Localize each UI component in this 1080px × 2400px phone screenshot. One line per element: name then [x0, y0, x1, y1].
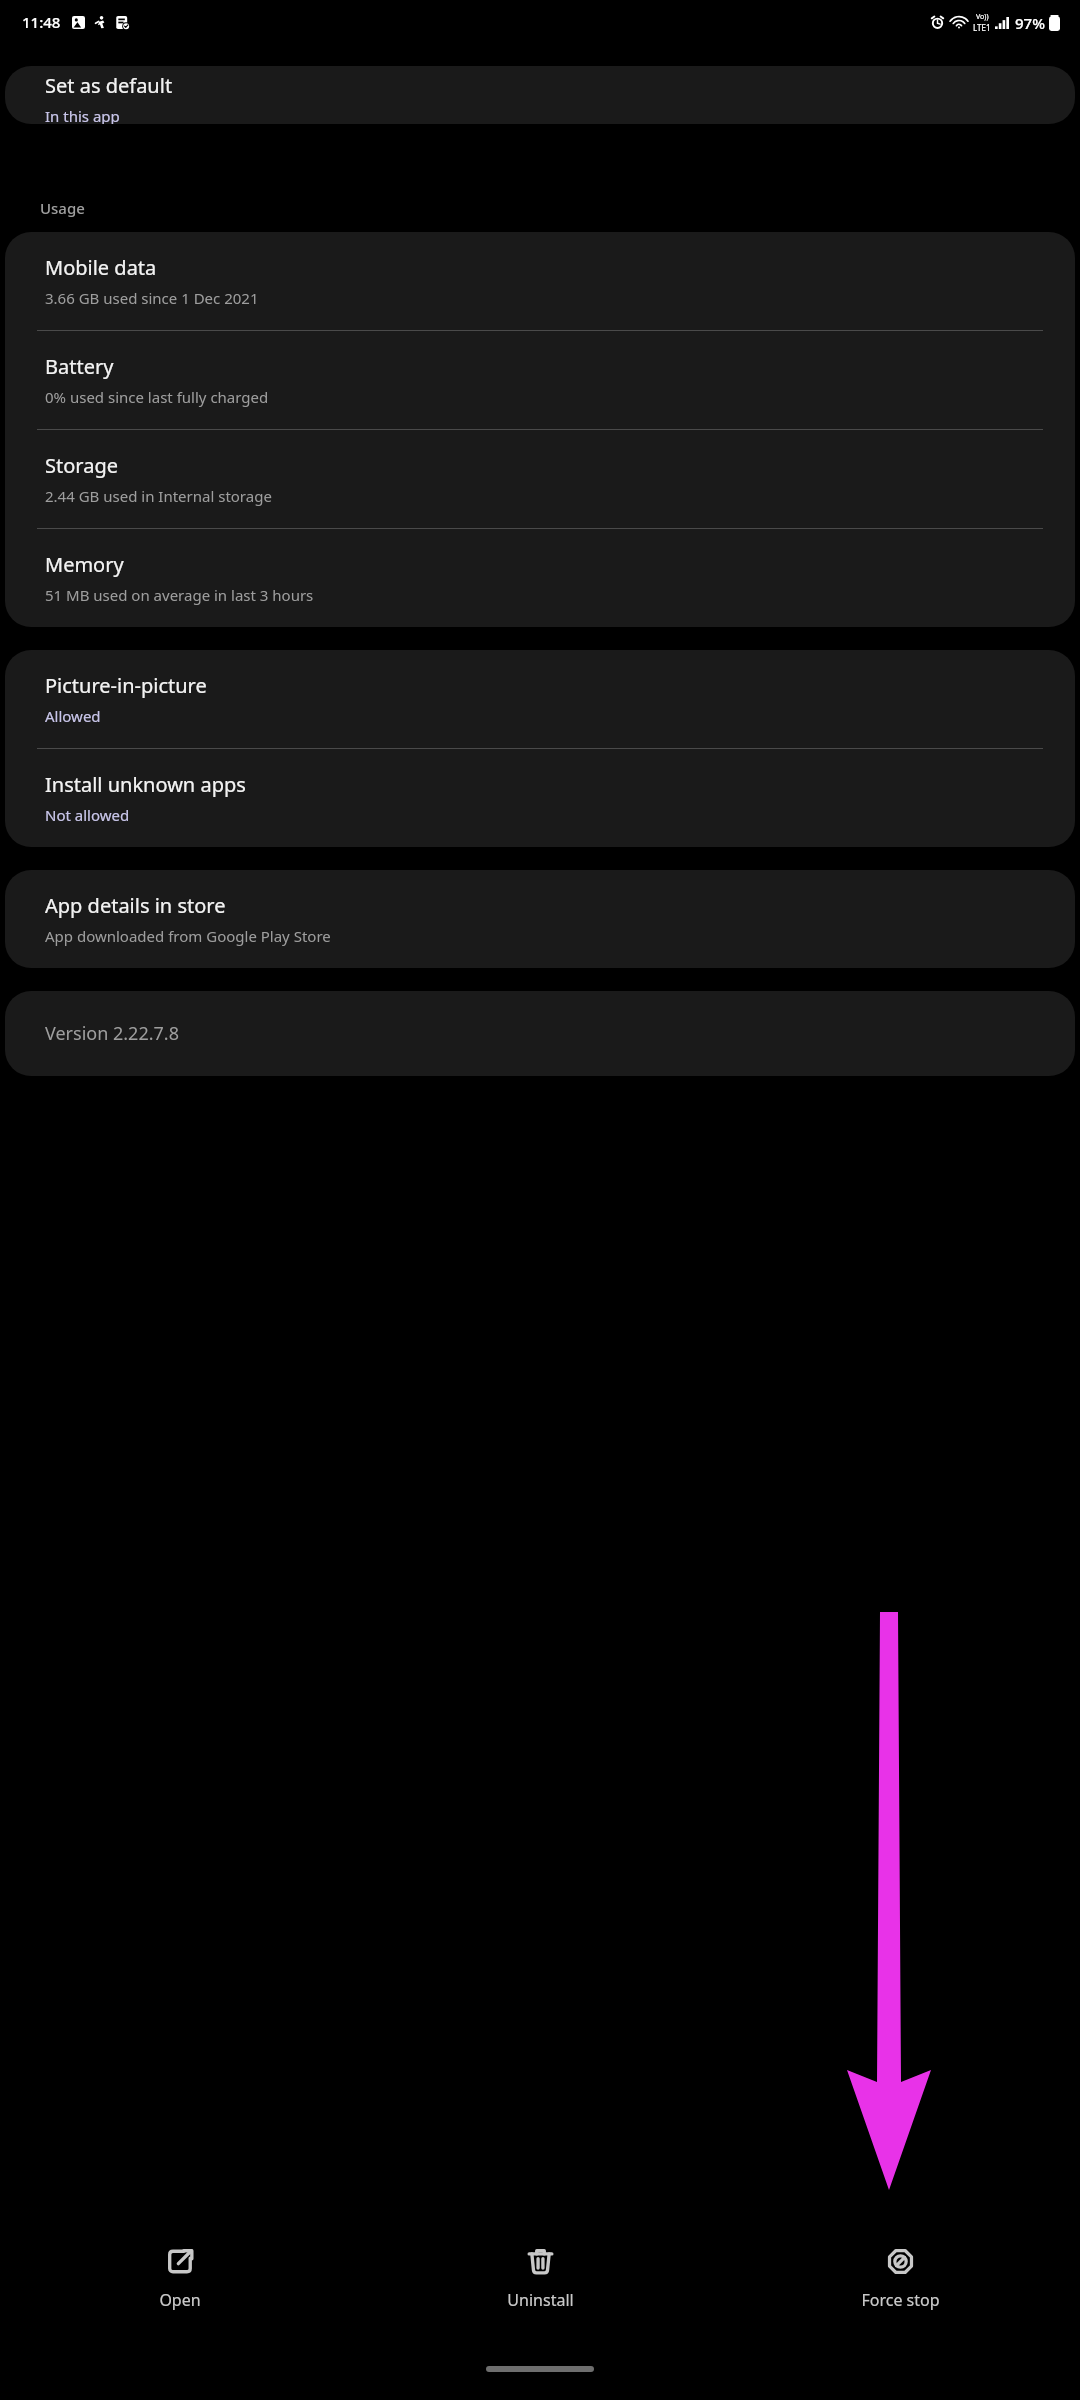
button[interactable]: Back	[14, 57, 62, 105]
staticText: Storage	[45, 452, 118, 479]
staticText: Memory	[45, 551, 124, 578]
button[interactable]: Set as default	[5, 66, 1075, 124]
staticText: 3.66 GB used since 1 Dec 2021	[45, 288, 259, 308]
staticText: 0% used since last fully charged	[45, 387, 269, 407]
button[interactable]: Force stop	[720, 2226, 1080, 2356]
button[interactable]: Uninstall	[360, 2226, 720, 2356]
staticText: LTE1	[973, 22, 991, 33]
staticText: Usage	[40, 198, 85, 218]
staticText: Set as default	[45, 72, 173, 99]
button[interactable]: Storage	[5, 430, 1075, 529]
staticText: 11:48	[22, 12, 61, 32]
button[interactable]: Mobile data	[5, 232, 1075, 331]
staticText: Allowed	[45, 706, 101, 726]
staticText: 97%	[1015, 13, 1045, 33]
button[interactable]: Picture-in-picture	[5, 650, 1075, 749]
staticText: 51 MB used on average in last 3 hours	[45, 585, 314, 605]
button[interactable]: Open	[0, 2226, 360, 2356]
staticText: Open	[159, 2289, 201, 2311]
staticText: Version 2.22.7.8	[45, 1021, 179, 1046]
staticText: Picture-in-picture	[45, 672, 207, 699]
staticText: Uninstall	[507, 2289, 574, 2311]
staticText: App downloaded from Google Play Store	[45, 926, 331, 946]
staticText: App info	[70, 64, 175, 99]
staticText: In this app	[45, 106, 120, 124]
button[interactable]: Install unknown apps	[5, 749, 1075, 847]
staticText: Force stop	[861, 2289, 940, 2311]
staticText: 2.44 GB used in Internal storage	[45, 486, 272, 506]
button[interactable]: App details in store	[5, 870, 1075, 968]
staticText: Battery	[45, 353, 114, 380]
button[interactable]: Battery	[5, 331, 1075, 430]
button[interactable]: Version 2.22.7.8	[5, 991, 1075, 1076]
staticText: Vo))	[976, 12, 989, 22]
staticText: Install unknown apps	[45, 771, 246, 798]
staticText: Not allowed	[45, 805, 130, 825]
staticText: App details in store	[45, 892, 226, 919]
button[interactable]: Memory	[5, 529, 1075, 627]
staticText: Mobile data	[45, 254, 157, 281]
